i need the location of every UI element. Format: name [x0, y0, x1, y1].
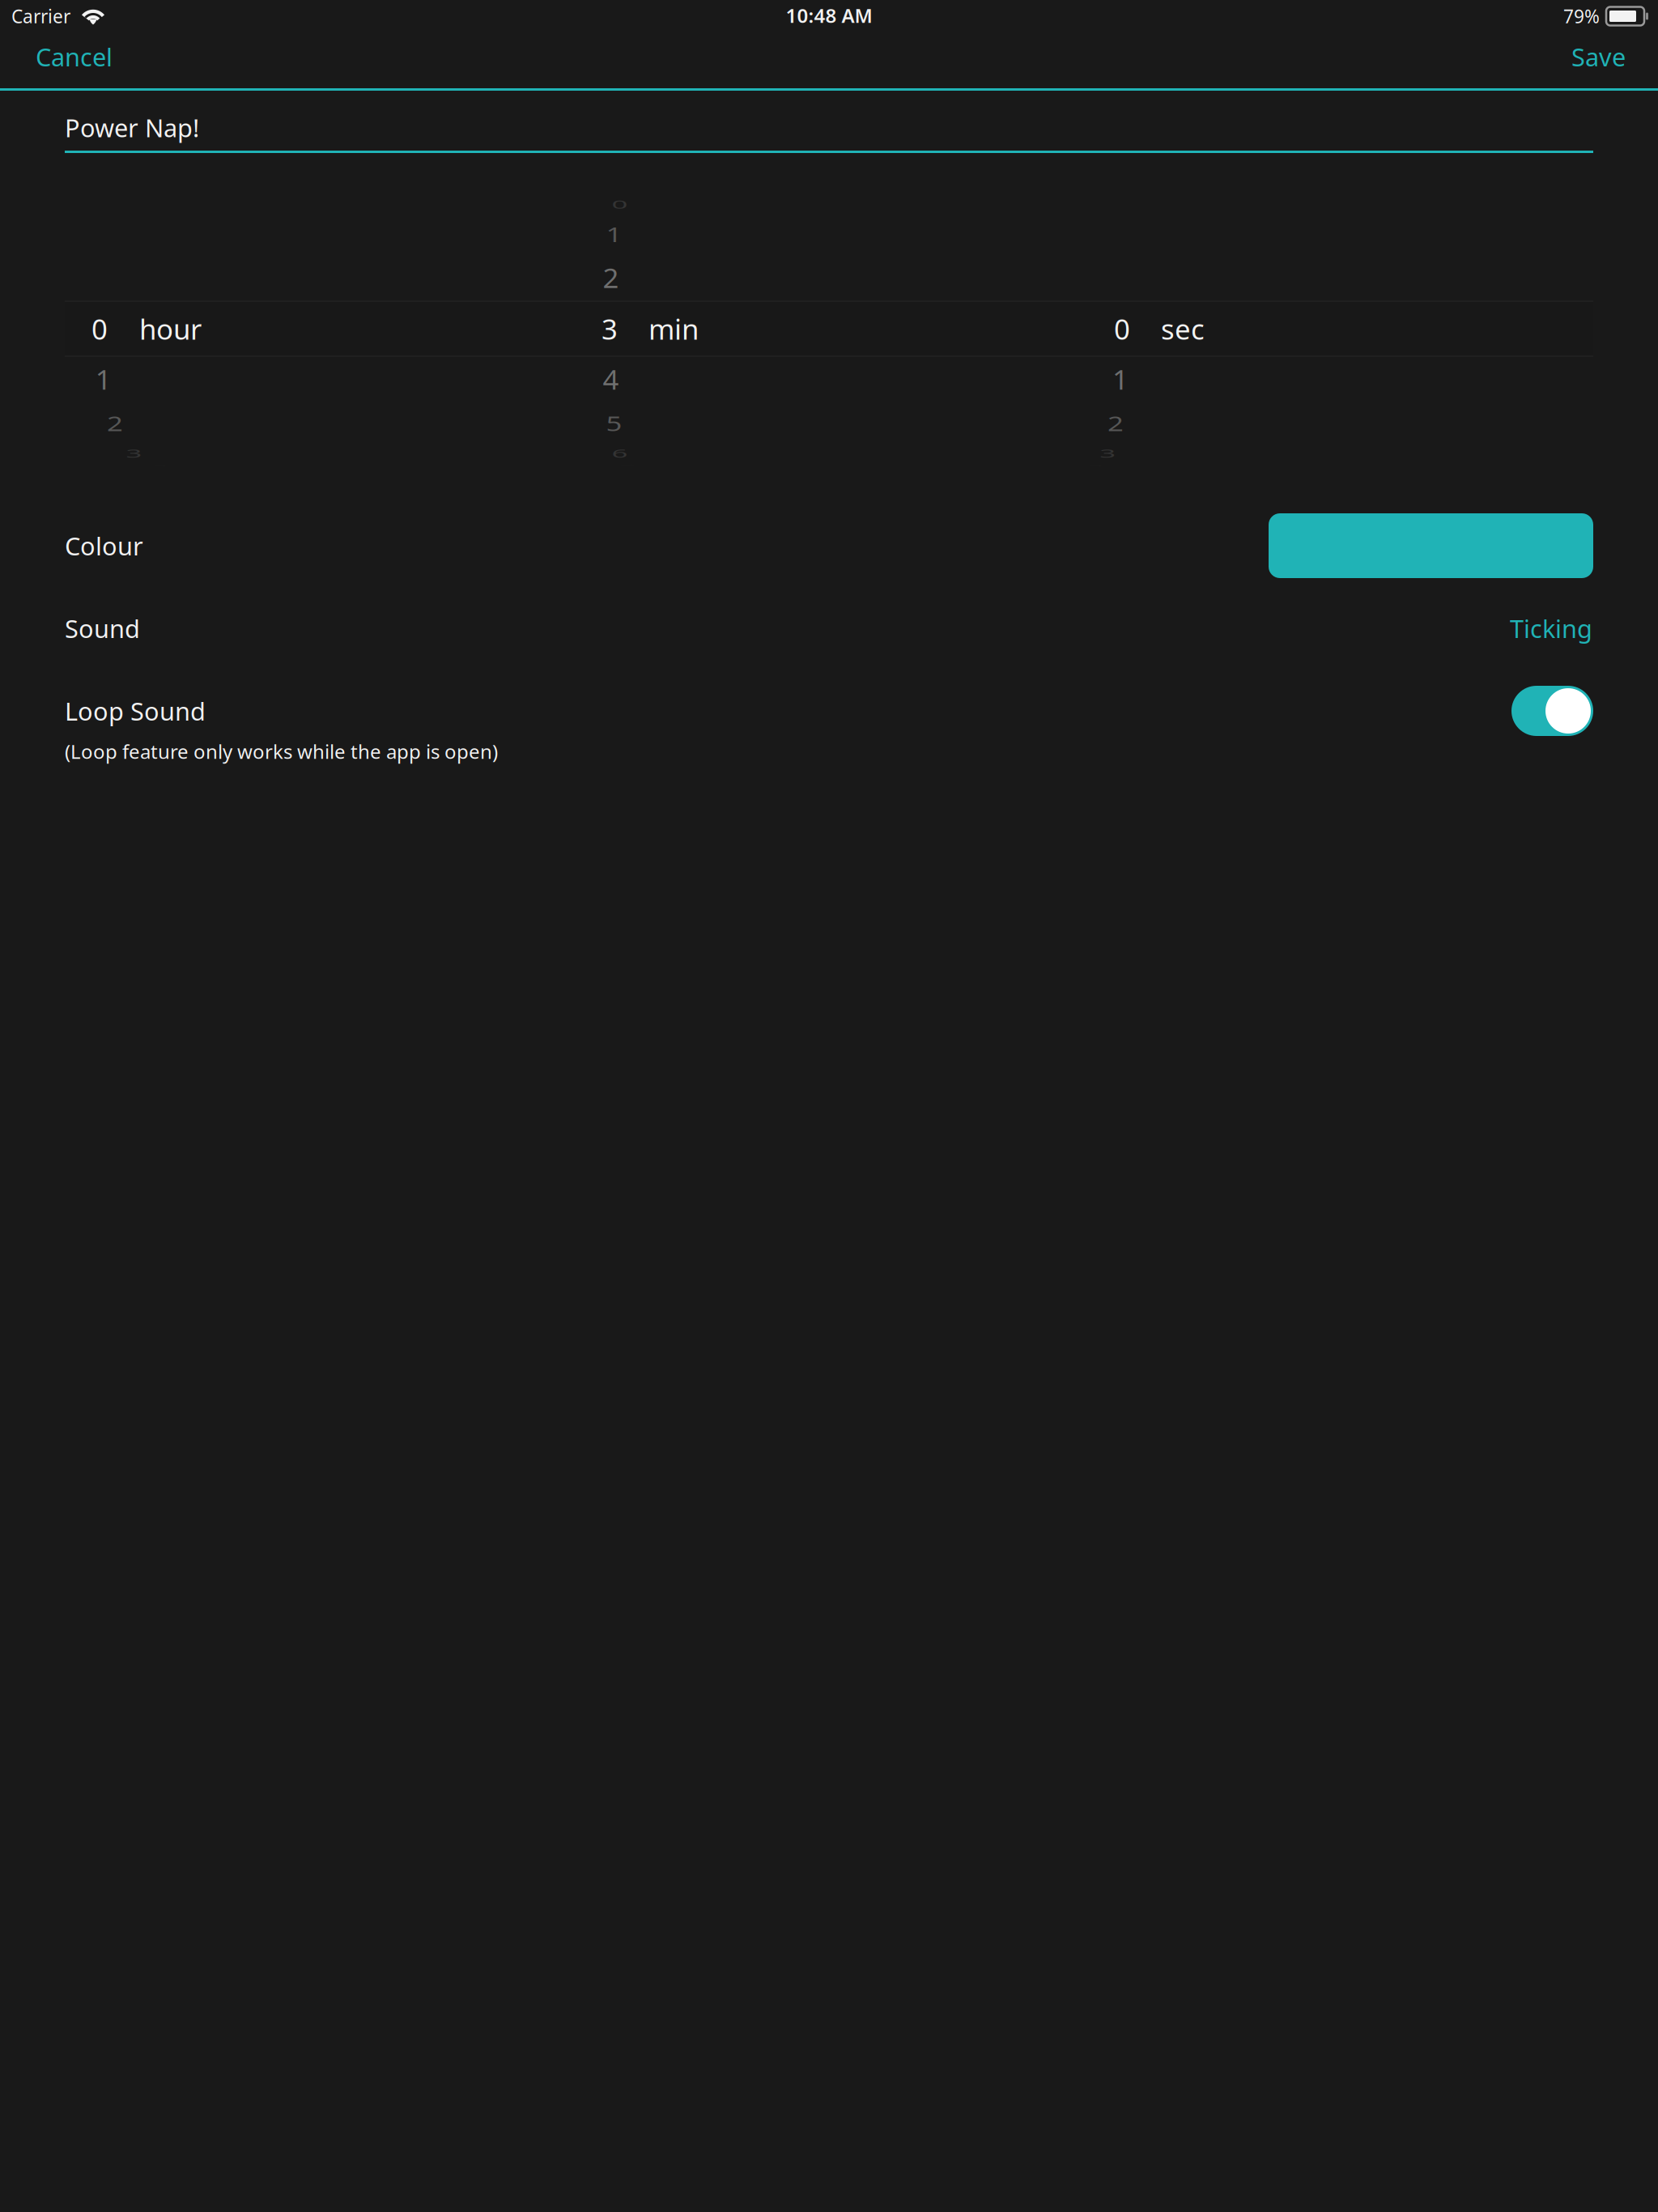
staticText: 3	[602, 310, 618, 347]
staticText: sec	[1161, 310, 1205, 347]
button[interactable]: Loop Sound	[0, 0, 1658, 2212]
button[interactable]: 0 sec	[0, 0, 1658, 2212]
staticText: 0	[612, 186, 628, 223]
staticText: 1	[1112, 361, 1129, 398]
button[interactable]: Colour	[0, 0, 1658, 2212]
staticText: 7	[619, 447, 636, 484]
staticText: 1	[606, 216, 622, 253]
button[interactable]: Save	[0, 0, 1658, 2212]
staticText: Sound	[65, 612, 140, 645]
button[interactable]: 3 min	[0, 0, 1658, 2212]
staticText: 3	[126, 435, 142, 472]
staticText: 2	[1108, 405, 1124, 442]
staticText: Ticking	[1510, 612, 1592, 645]
staticText: 3	[1100, 435, 1116, 472]
staticText: 1	[95, 361, 111, 398]
staticText: 0	[1114, 310, 1130, 347]
staticText: 2	[603, 259, 619, 296]
button[interactable]: Cancel	[0, 0, 1658, 2212]
staticText: (Loop feature only works while the app i…	[65, 738, 498, 764]
button[interactable]: Power Nap!	[0, 0, 1658, 2212]
staticText: 79%	[1563, 4, 1600, 28]
staticText: hour	[139, 310, 202, 347]
staticText: Power Nap!	[65, 111, 199, 144]
staticText: 2	[107, 405, 123, 442]
staticText: 10:48 AM	[786, 3, 872, 28]
staticText: 5	[606, 405, 622, 442]
staticText: Carrier	[11, 4, 70, 28]
staticText: Colour	[65, 529, 143, 562]
staticText: Cancel	[36, 40, 113, 73]
staticText: 4	[603, 361, 619, 398]
staticText: min	[648, 310, 699, 347]
staticText: Save	[1571, 40, 1626, 73]
button[interactable]: Sound	[0, 0, 1658, 2212]
staticText: 0	[91, 310, 108, 347]
staticText: Loop Sound	[65, 694, 206, 727]
button[interactable]: 0 hour	[0, 0, 1658, 2212]
staticText: 6	[612, 435, 628, 472]
